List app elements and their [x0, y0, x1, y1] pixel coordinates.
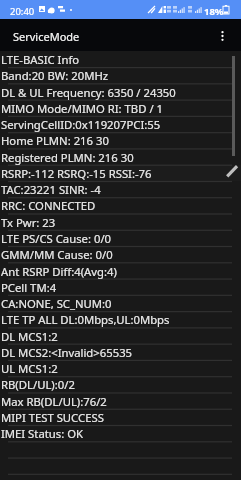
staticText: RSRP:-112 RSRQ:-15 RSSI:-76 [1, 166, 152, 181]
button[interactable]: CA:NONE, SC_NUM:0 [0, 295, 241, 311]
button[interactable]: LTE-BASIC Info [0, 51, 241, 67]
button[interactable]: Tx Pwr: 23 [0, 214, 241, 230]
staticText: ServiceMode [13, 29, 80, 44]
button[interactable]: DL MCS1:2 [0, 328, 241, 344]
staticText: DL & UL Frequency: 6350 / 24350 [1, 85, 176, 100]
button[interactable]: RB(DL/UL):0/2 [0, 376, 241, 392]
staticText: DL MCS1:2 [1, 329, 58, 344]
staticText: Band:20 BW: 20MHz [1, 68, 109, 83]
button[interactable]: MIMO Mode/MIMO RI: TBD / 1 [0, 100, 241, 116]
staticText: Max RB(DL/UL):76/2 [1, 394, 107, 409]
button[interactable]: ServingCellID:0x119207PCI:55 [0, 116, 241, 132]
staticText: UL MCS1:2 [1, 361, 58, 376]
button[interactable]: GMM/MM Cause: 0/0 [0, 246, 241, 262]
staticText: DL MCS2:<Invalid>65535 [1, 345, 133, 360]
staticText: LTE-BASIC Info [1, 52, 80, 67]
staticText: TAC:23221 SINR: -4 [1, 182, 101, 197]
button[interactable]: Band:20 BW: 20MHz [0, 67, 241, 83]
button[interactable] [0, 441, 241, 457]
staticText: CA:NONE, SC_NUM:0 [1, 296, 112, 311]
staticText: LTE TP ALL DL:0Mbps,UL:0Mbps [1, 312, 170, 327]
button[interactable]: Ant RSRP Diff:4(Avg:4) [0, 263, 241, 279]
button[interactable]: LTE PS/CS Cause: 0/0 [0, 230, 241, 246]
staticText: Tx Pwr: 23 [1, 215, 56, 230]
button[interactable]: Edit [226, 165, 238, 177]
button[interactable]: MIPI TEST SUCCESS [0, 409, 241, 425]
staticText: MIPI TEST SUCCESS [1, 410, 104, 425]
staticText: ServingCellID:0x119207PCI:55 [1, 117, 161, 132]
button[interactable]: UL MCS1:2 [0, 360, 241, 376]
staticText: Ant RSRP Diff:4(Avg:4) [1, 264, 117, 279]
button[interactable]: Registered PLMN: 216 30 [0, 149, 241, 165]
staticText: Registered PLMN: 216 30 [1, 150, 134, 165]
staticText: RRC: CONNECTED [1, 198, 96, 213]
button[interactable]: RSRP:-112 RSRQ:-15 RSSI:-76 [0, 165, 241, 181]
staticText: IMEI Status: OK [1, 426, 83, 441]
staticText: MIMO Mode/MIMO RI: TBD / 1 [1, 101, 163, 116]
button[interactable]: Home PLMN: 216 30 [0, 132, 241, 148]
staticText: GMM/MM Cause: 0/0 [1, 247, 113, 262]
button[interactable]: RRC: CONNECTED [0, 197, 241, 213]
button[interactable]: PCell TM:4 [0, 279, 241, 295]
button[interactable]: TAC:23221 SINR: -4 [0, 181, 241, 197]
staticText: Home PLMN: 216 30 [1, 133, 109, 148]
button[interactable]: IMEI Status: OK [0, 425, 241, 441]
button[interactable]: DL MCS2:<Invalid>65535 [0, 344, 241, 360]
staticText: 20:40 [10, 5, 35, 18]
staticText: PCell TM:4 [1, 280, 57, 295]
staticText: LTE PS/CS Cause: 0/0 [1, 231, 112, 246]
button[interactable]: DL & UL Frequency: 6350 / 24350 [0, 84, 241, 100]
staticText: 18% [204, 5, 224, 18]
button[interactable] [0, 458, 241, 474]
button[interactable] [0, 474, 241, 480]
button[interactable]: More options [209, 19, 236, 51]
button[interactable]: LTE TP ALL DL:0Mbps,UL:0Mbps [0, 311, 241, 327]
staticText: RB(DL/UL):0/2 [1, 377, 75, 392]
button[interactable]: Max RB(DL/UL):76/2 [0, 393, 241, 409]
